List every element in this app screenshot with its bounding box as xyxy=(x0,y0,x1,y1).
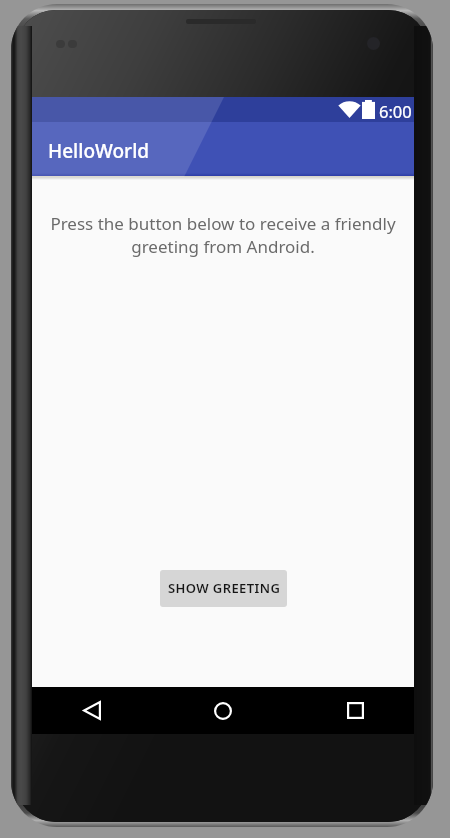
button[interactable]: Recent apps xyxy=(323,687,387,734)
staticText: HelloWorld xyxy=(48,138,150,164)
button[interactable]: Back xyxy=(60,687,124,734)
staticText: 6:00 xyxy=(379,100,412,122)
button[interactable]: Home xyxy=(191,687,255,734)
button[interactable]: SHOW GREETING xyxy=(160,570,287,607)
staticText: Press the button below to receive a frie… xyxy=(46,212,400,258)
staticText: SHOW GREETING xyxy=(168,579,281,597)
